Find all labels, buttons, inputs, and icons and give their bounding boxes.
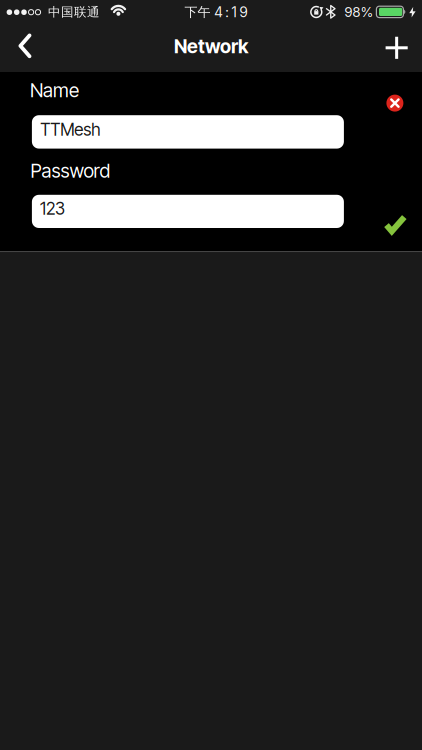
button[interactable]: Confirm [379, 209, 412, 239]
staticText: : [225, 4, 229, 20]
staticText: 下午 [184, 4, 210, 20]
staticText: 98% [344, 4, 373, 20]
button[interactable]: Add [374, 23, 422, 73]
button[interactable]: Name text field [32, 115, 344, 149]
staticText: 1 [231, 4, 237, 20]
button[interactable]: Password text field [32, 195, 344, 228]
button[interactable]: Delete network [380, 89, 409, 118]
staticText: 9 [239, 4, 248, 20]
staticText: TTMesh [40, 119, 100, 140]
button[interactable]: Back [0, 22, 47, 69]
staticText: 中国联通 [48, 4, 100, 20]
staticText: Name [30, 79, 79, 102]
staticText: Network [174, 35, 248, 58]
staticText: Password [31, 159, 111, 182]
staticText: 123 [40, 198, 65, 219]
staticText: 4 [214, 4, 223, 20]
